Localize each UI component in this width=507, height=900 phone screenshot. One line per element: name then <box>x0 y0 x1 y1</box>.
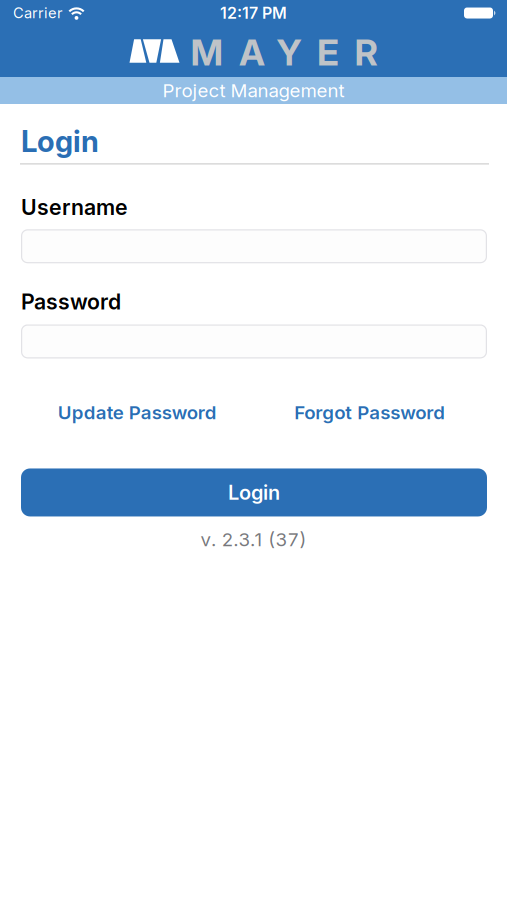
staticText: Username <box>21 195 128 220</box>
staticText: Login <box>228 481 280 504</box>
staticText: Login <box>21 124 99 159</box>
button[interactable]: Login <box>21 468 487 516</box>
staticText: Password <box>21 289 121 314</box>
button[interactable]: Password text field <box>0 324 507 358</box>
staticText: Forgot Password <box>294 401 445 423</box>
staticText: Update Password <box>58 401 217 423</box>
button[interactable]: Forgot Password <box>253 401 486 423</box>
staticText: v. 2.3.1 (37) <box>201 528 306 550</box>
staticText: Project Management <box>162 79 344 101</box>
staticText: Carrier <box>13 4 63 22</box>
button[interactable]: Username text field <box>0 229 507 263</box>
button[interactable]: Update Password <box>21 401 253 423</box>
staticText: MAYER <box>190 31 377 74</box>
staticText: 12:17 PM <box>220 4 287 22</box>
